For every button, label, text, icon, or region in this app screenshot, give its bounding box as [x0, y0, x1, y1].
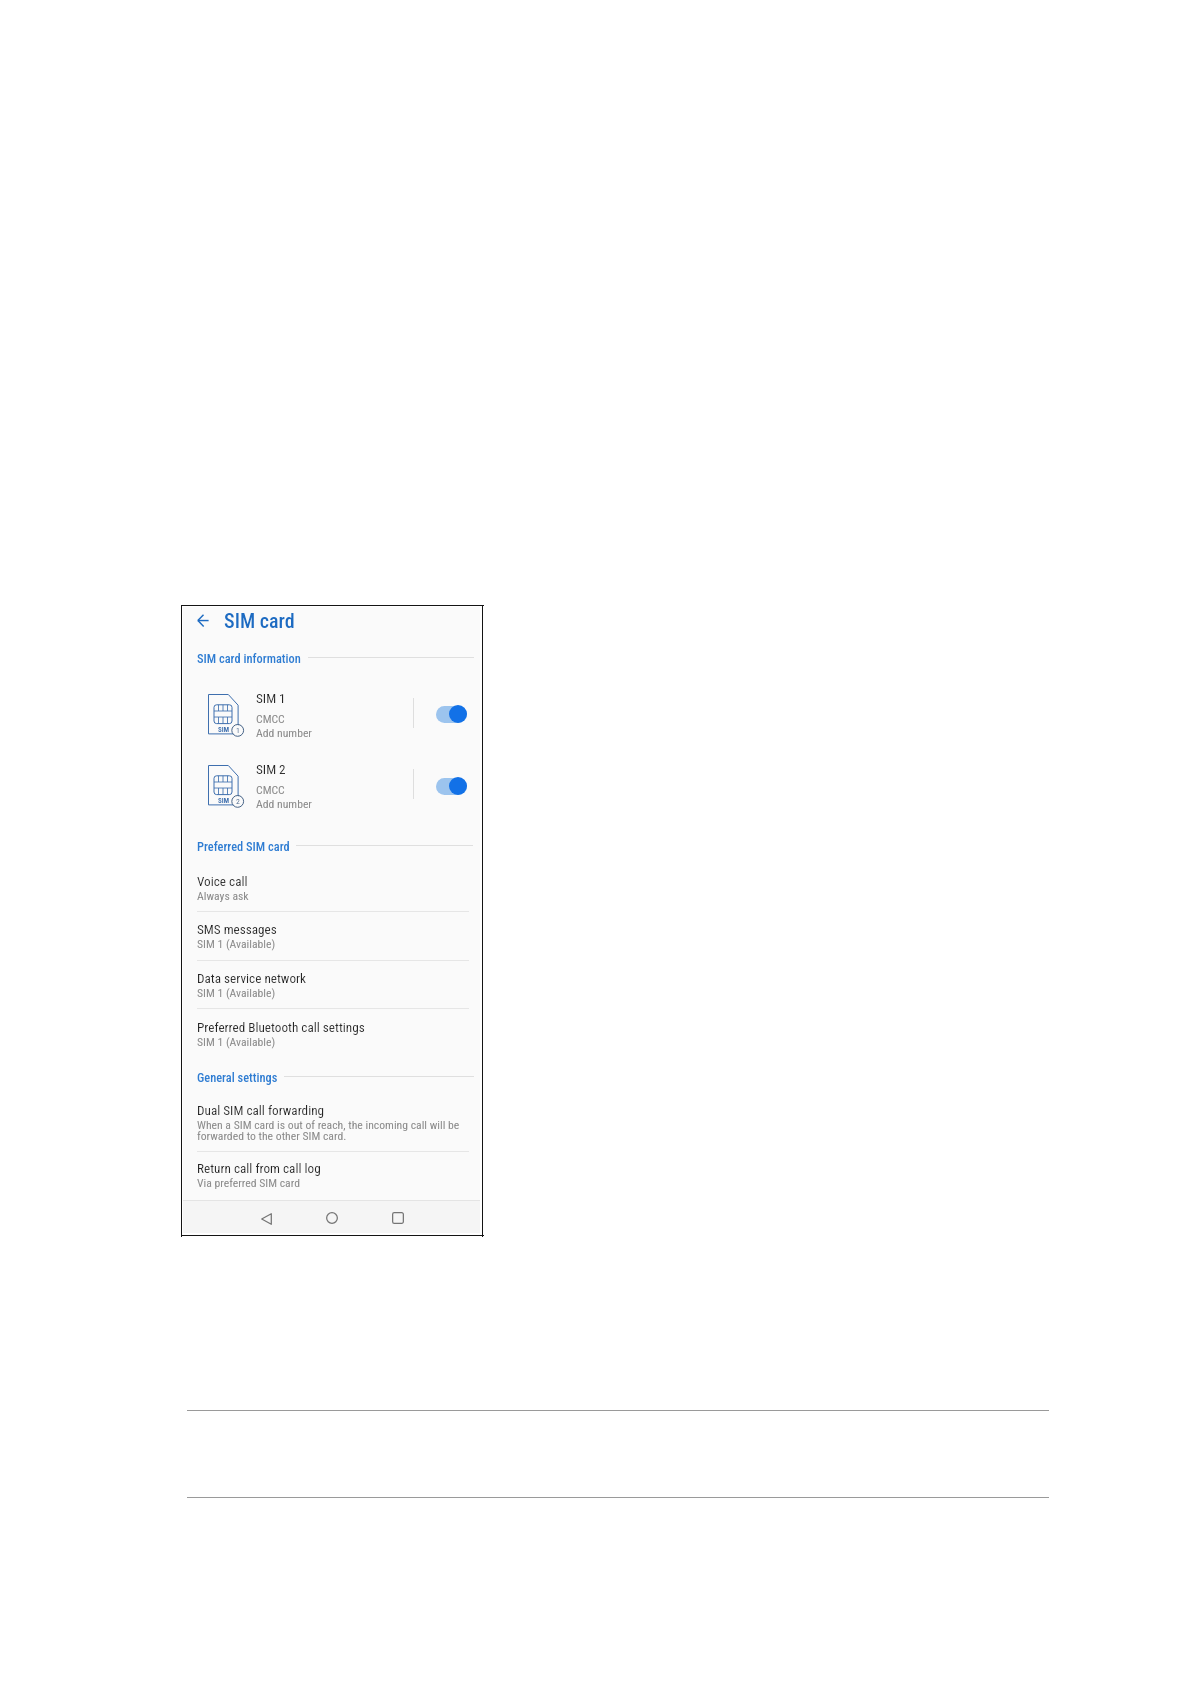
staticText: Dual SIM call forwarding: [197, 1103, 325, 1118]
staticText: Always ask: [197, 889, 249, 903]
staticText: SIM 1 (Available): [197, 1035, 276, 1049]
staticText: SIM 1 (Available): [197, 937, 276, 951]
staticText: forwarded to the other SIM card.: [197, 1129, 347, 1143]
staticText: Data service network: [197, 971, 307, 986]
staticText: Voice call: [197, 874, 248, 889]
button[interactable]: [183, 758, 480, 814]
button[interactable]: [183, 1093, 480, 1150]
staticText: SIM card: [224, 609, 295, 633]
button[interactable]: [183, 912, 480, 960]
staticText: SIM: [218, 726, 229, 734]
staticText: SIM 1 (Available): [197, 986, 276, 1000]
button[interactable]: Recents: [383, 1203, 413, 1233]
staticText: General settings: [197, 1070, 278, 1085]
staticText: Add number: [256, 726, 312, 740]
staticText: Via preferred SIM card: [197, 1176, 300, 1190]
staticText: Preferred Bluetooth call settings: [197, 1020, 365, 1035]
button[interactable]: Toggle SIM 1: [432, 701, 471, 727]
staticText: CMCC: [256, 712, 285, 726]
button[interactable]: [183, 961, 480, 1009]
staticText: Add number: [256, 797, 312, 811]
staticText: 2: [236, 797, 240, 806]
staticText: Return call from call log: [197, 1161, 321, 1176]
button[interactable]: [183, 1010, 480, 1054]
staticText: SIM card information: [197, 651, 301, 666]
staticText: SIM 2: [256, 762, 286, 777]
staticText: 1: [236, 726, 240, 735]
button[interactable]: Back: [251, 1204, 281, 1234]
staticText: SIM 1: [256, 691, 286, 706]
button[interactable]: [183, 1151, 480, 1195]
staticText: CMCC: [256, 783, 285, 797]
staticText: Preferred SIM card: [197, 839, 290, 854]
button[interactable]: Home: [317, 1203, 347, 1233]
button[interactable]: [183, 864, 480, 911]
staticText: SIM: [218, 797, 229, 805]
button[interactable]: Toggle SIM 2: [432, 773, 471, 799]
button[interactable]: [183, 687, 480, 743]
button[interactable]: Back: [196, 613, 210, 628]
staticText: When a SIM card is out of reach, the inc…: [197, 1118, 460, 1132]
staticText: SMS messages: [197, 922, 277, 937]
